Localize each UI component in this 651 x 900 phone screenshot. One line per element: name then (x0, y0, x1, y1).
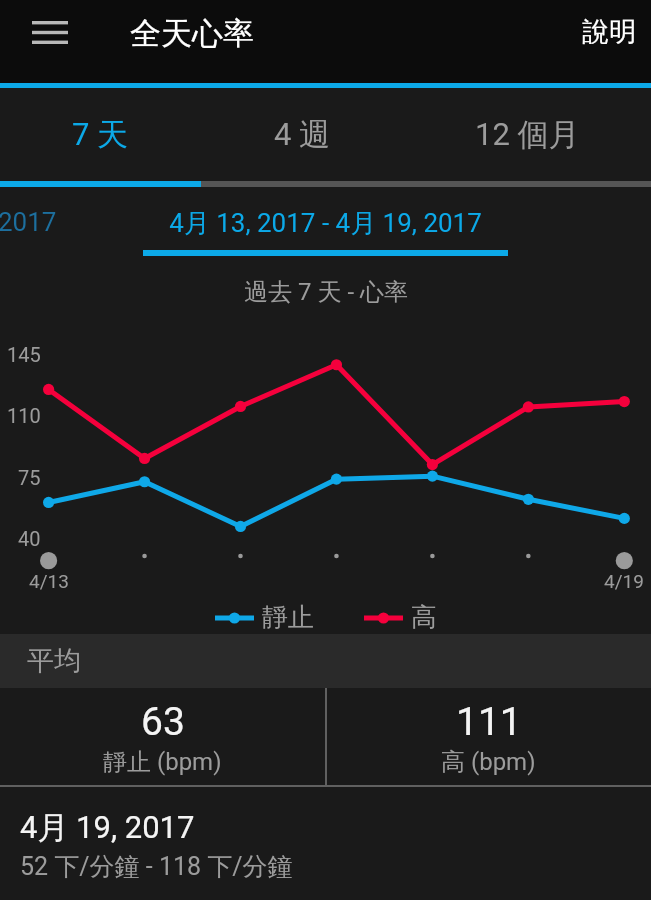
staticText: 說明 (582, 15, 636, 49)
staticText: 40 (18, 527, 41, 550)
staticText: 高 (411, 601, 437, 634)
staticText: 4月 19, 2017 (20, 808, 195, 847)
staticText: 高 (bpm) (441, 747, 536, 777)
button[interactable]: 靜止 (215, 601, 314, 634)
staticText: 靜止 (262, 601, 314, 634)
staticText: 4/19 (604, 570, 644, 592)
button[interactable]: 4 週 (201, 88, 404, 181)
staticText: 110 (7, 404, 41, 427)
staticText: 63 (141, 699, 185, 745)
staticText: 2017 (0, 207, 57, 237)
staticText: 7 天 (72, 115, 129, 154)
staticText: 4月 13, 2017 - 4月 19, 2017 (169, 207, 482, 240)
staticText: 過去 7 天 - 心率 (244, 277, 408, 307)
button[interactable]: 12 個月 (404, 88, 651, 181)
button[interactable]: Open navigation menu (22, 4, 78, 60)
button[interactable]: 4月 19, 2017 (0, 789, 651, 900)
button[interactable]: 說明 (582, 15, 636, 49)
staticText: 145 (7, 343, 41, 366)
button[interactable]: 7 天 (0, 88, 201, 181)
button[interactable]: 63 (0, 688, 325, 787)
staticText: 12 個月 (475, 115, 580, 154)
button[interactable]: 高 (364, 601, 437, 634)
staticText: 75 (18, 466, 41, 489)
staticText: 平均 (27, 644, 81, 678)
button[interactable]: 111 (326, 688, 651, 787)
staticText: 52 下/分鐘 - 118 下/分鐘 (20, 851, 293, 882)
staticText: 4/13 (29, 570, 69, 592)
staticText: 4 週 (274, 115, 331, 154)
staticText: 111 (456, 699, 522, 745)
staticText: 全天心率 (130, 14, 254, 53)
staticText: 靜止 (bpm) (103, 747, 222, 777)
